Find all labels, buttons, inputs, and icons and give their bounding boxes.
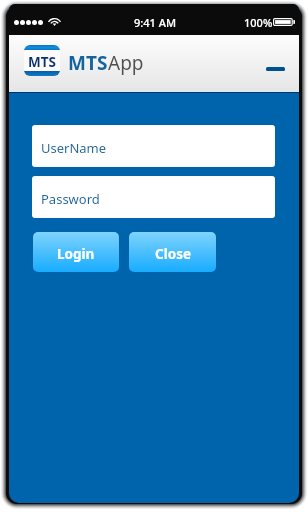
button[interactable]: Password <box>32 176 275 218</box>
staticText: MTS <box>68 50 108 76</box>
button[interactable]: Close <box>129 232 216 272</box>
staticText: Password <box>41 190 100 208</box>
staticText: Close <box>155 245 191 263</box>
staticText: 100% <box>244 15 273 30</box>
staticText: 9:41 AM <box>134 15 177 30</box>
button[interactable]: Minimize <box>259 60 292 78</box>
button[interactable]: UserName <box>32 125 275 167</box>
staticText: MTS <box>28 53 56 71</box>
staticText: App <box>108 50 144 76</box>
button[interactable]: Login <box>33 232 119 272</box>
staticText: Login <box>57 245 95 263</box>
staticText: UserName <box>41 139 107 157</box>
